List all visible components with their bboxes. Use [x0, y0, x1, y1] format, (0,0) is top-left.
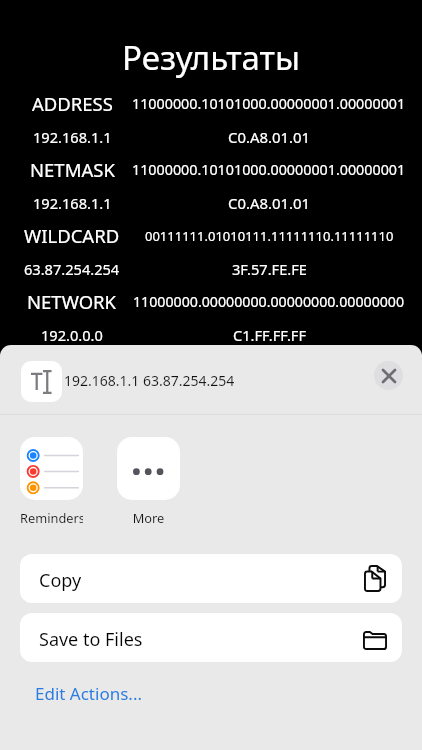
staticText: Save to Files — [39, 627, 143, 652]
staticText: 192.0.0.0 — [41, 325, 103, 345]
staticText: More — [117, 509, 180, 526]
staticText: NETWORK — [27, 289, 117, 314]
button[interactable]: Edit Actions... — [35, 682, 142, 705]
button[interactable]: More — [117, 437, 180, 527]
staticText: Copy — [39, 568, 82, 593]
staticText: 11000000.00000000.00000000.00000000 — [133, 292, 405, 311]
button[interactable]: Save to Files — [20, 613, 402, 662]
staticText: 11000000.10101000.00000001.00000001 — [132, 94, 406, 113]
staticText: C0.A8.01.01 — [228, 193, 311, 213]
button[interactable]: Copy — [20, 554, 402, 603]
staticText: 192.168.1.1 — [33, 127, 112, 147]
staticText: 192.168.1.1 63.87.254.254 — [64, 371, 235, 390]
staticText: C0.A8.01.01 — [228, 127, 311, 147]
staticText: 11000000.10101000.00000001.00000001 — [132, 160, 406, 179]
staticText: WILDCARD — [24, 223, 120, 248]
staticText: 192.168.1.1 — [33, 193, 112, 213]
button[interactable]: Close — [374, 361, 403, 390]
staticText: C1.FF.FF.FF — [233, 325, 306, 345]
button[interactable]: Reminders — [20, 437, 83, 527]
staticText: Edit Actions... — [35, 682, 142, 705]
staticText: NETMASK — [30, 157, 115, 182]
staticText: 00111111.01010111.11111110.11111110 — [145, 227, 394, 245]
staticText: 63.87.254.254 — [24, 259, 120, 279]
staticText: Результаты — [0, 35, 422, 80]
staticText: 3F.57.FE.FE — [232, 259, 307, 279]
button[interactable]: 192.168.1.1 63.87.254.254 — [0, 345, 422, 415]
staticText: ADDRESS — [32, 91, 113, 116]
staticText: Reminders — [20, 509, 83, 526]
